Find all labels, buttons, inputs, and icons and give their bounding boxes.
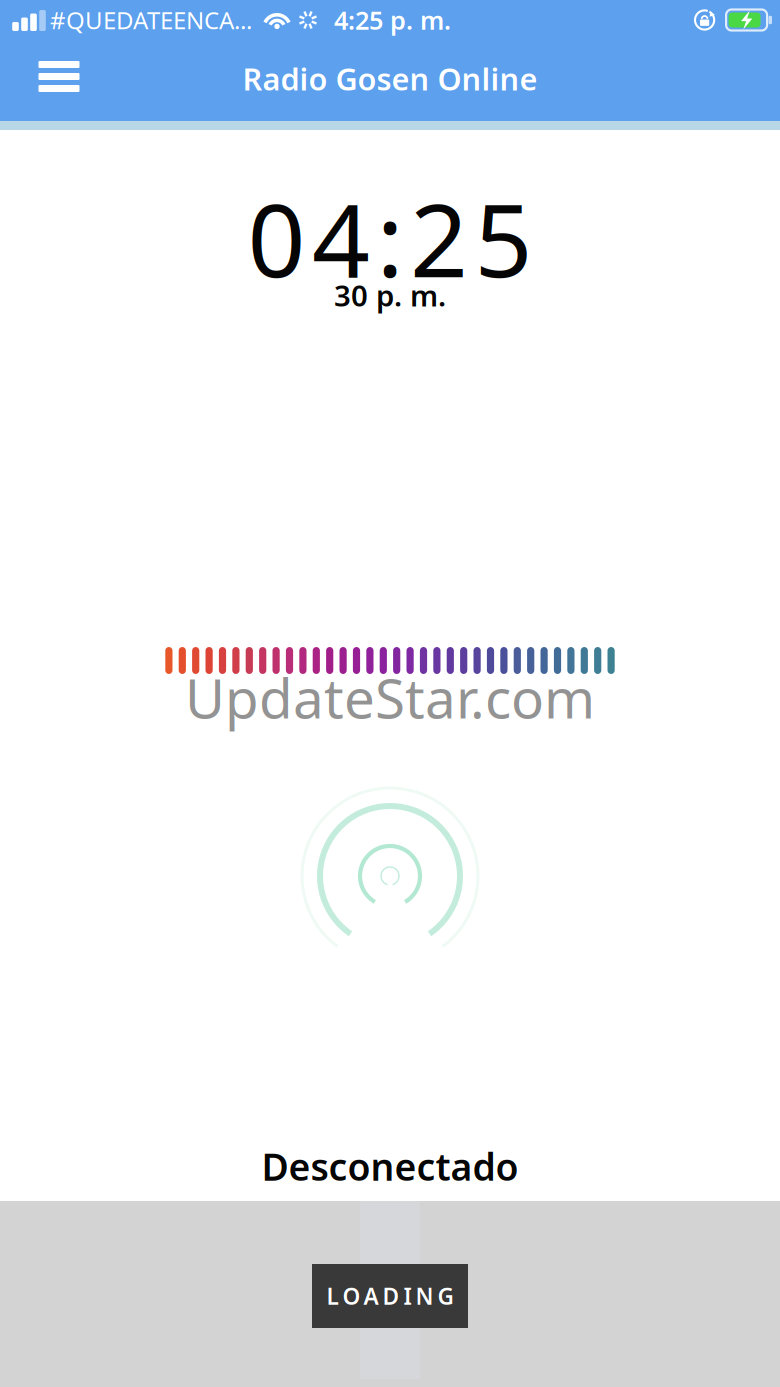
- staticText: 4:25 p. m.: [334, 3, 451, 37]
- button[interactable]: Menu: [26, 46, 92, 106]
- staticText: UpdateStar.com: [185, 661, 595, 734]
- staticText: 04:25: [247, 171, 532, 305]
- staticText: 30 p. m.: [334, 275, 446, 314]
- staticText: LOADING: [326, 1281, 453, 1311]
- staticText: #QUEDATEENCA...: [50, 4, 252, 36]
- staticText: Desconectado: [261, 1141, 518, 1191]
- staticText: Radio Gosen Online: [242, 58, 537, 99]
